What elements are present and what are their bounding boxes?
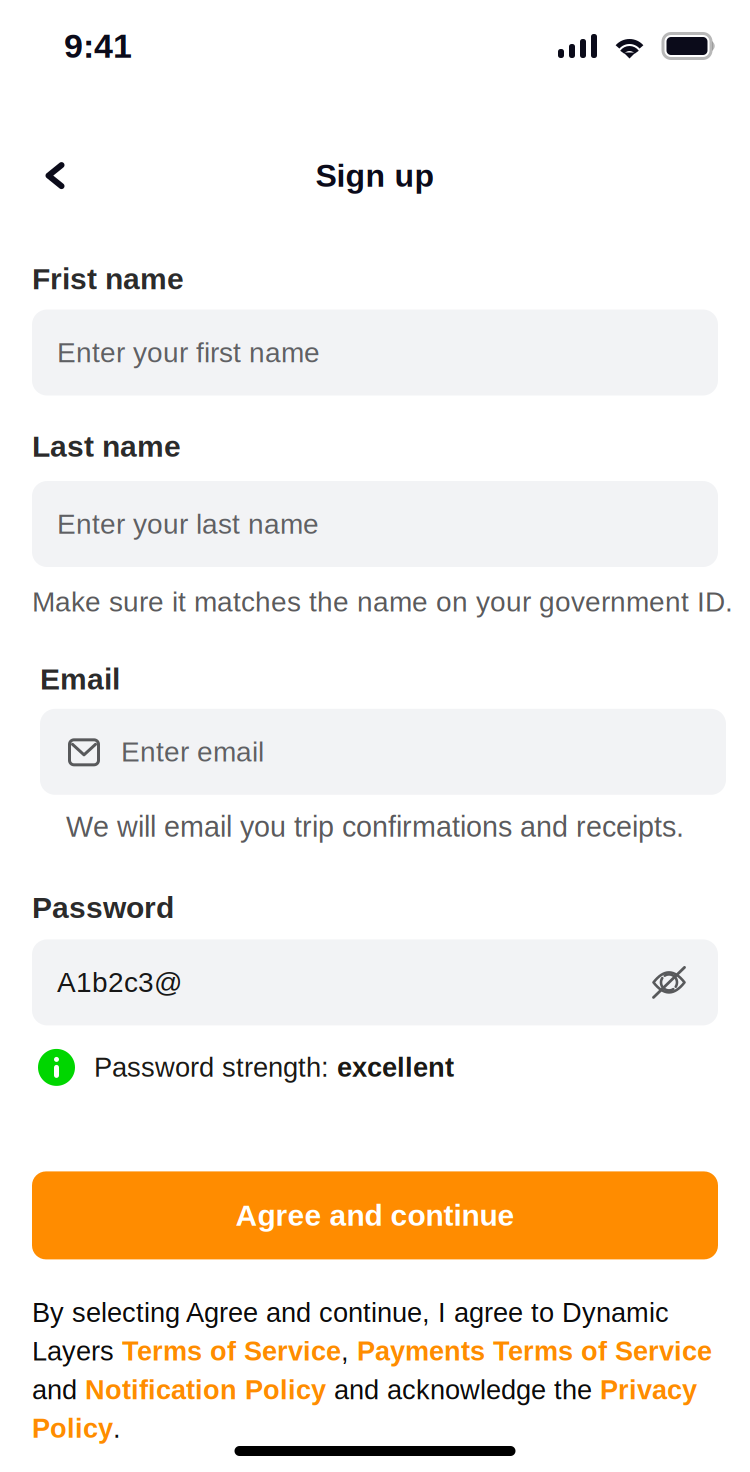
button[interactable]: Policy xyxy=(32,1413,113,1444)
button[interactable]: Terms of Service xyxy=(122,1336,341,1366)
staticText: Frist name xyxy=(32,262,184,295)
button[interactable]: Back xyxy=(22,143,88,209)
staticText: Terms of Service xyxy=(122,1336,341,1366)
staticText: , xyxy=(341,1336,357,1366)
staticText: Enter your last name xyxy=(57,508,319,540)
staticText: Notification Policy xyxy=(85,1375,326,1405)
button[interactable]: Show password xyxy=(637,950,701,1014)
staticText: Privacy xyxy=(600,1375,697,1405)
staticText: Enter email xyxy=(121,736,264,767)
staticText: Layers xyxy=(32,1336,122,1366)
staticText: Enter your first name xyxy=(57,337,320,368)
staticText: Password strength: excellent xyxy=(94,1052,454,1082)
staticText: A1b2c3@ xyxy=(57,967,182,998)
button[interactable]: Notification Policy xyxy=(85,1375,326,1405)
staticText: and acknowledge the xyxy=(326,1375,600,1405)
staticText: Agree and continue xyxy=(235,1199,514,1232)
staticText: Last name xyxy=(32,429,181,463)
button[interactable]: Payments Terms of Service xyxy=(357,1336,712,1366)
staticText: Sign up xyxy=(315,158,434,193)
staticText: Email xyxy=(40,662,120,696)
button[interactable]: Privacy xyxy=(600,1375,697,1405)
button[interactable]: Agree and continue xyxy=(32,1171,718,1259)
staticText: . xyxy=(113,1413,121,1444)
staticText: Policy xyxy=(32,1413,113,1444)
staticText: Payments Terms of Service xyxy=(357,1336,712,1366)
staticText: By selecting Agree and continue, I agree… xyxy=(32,1297,669,1328)
staticText: Make sure it matches the name on your go… xyxy=(32,586,733,617)
staticText: and xyxy=(32,1375,85,1405)
staticText: 9:41 xyxy=(64,27,132,65)
staticText: We will email you trip confirmations and… xyxy=(66,811,684,843)
staticText: Password xyxy=(32,891,174,924)
